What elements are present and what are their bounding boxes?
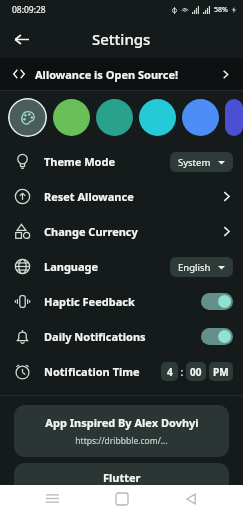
- staticText: https://dribbble.com/...: [75, 435, 168, 447]
- staticText: App Inspired By Alex Dovhyi: [45, 415, 199, 430]
- staticText: System: [178, 156, 211, 169]
- staticText: Notification Time: [44, 364, 140, 379]
- button[interactable]: Toggle: [201, 328, 233, 345]
- button[interactable]: 4: [161, 362, 178, 381]
- staticText: Allowance is Open Source!: [35, 67, 179, 82]
- button[interactable]: Recents: [35, 485, 69, 512]
- staticText: Settings: [92, 29, 151, 49]
- staticText: Theme Mode: [44, 154, 115, 169]
- staticText: Reset Allowance: [44, 189, 134, 204]
- staticText: Daily Notifications: [44, 329, 146, 344]
- button[interactable]: Toggle: [201, 293, 233, 310]
- staticText: PM: [213, 365, 229, 379]
- button[interactable]: Reset Allowance: [0, 179, 243, 214]
- button[interactable]: Flutter: [14, 463, 229, 485]
- button[interactable]: Back: [8, 26, 34, 52]
- button[interactable]: Theme colour: [53, 99, 90, 136]
- button[interactable]: Home: [105, 485, 139, 512]
- staticText: English: [178, 261, 211, 274]
- button[interactable]: App Inspired By Alex Dovhyi: [14, 405, 229, 457]
- staticText: Haptic Feedback: [44, 294, 135, 309]
- staticText: Change Currency: [44, 224, 138, 239]
- button[interactable]: Theme colour: [96, 99, 133, 136]
- button[interactable]: Theme colour: [182, 99, 219, 136]
- staticText: 00: [190, 365, 202, 379]
- button[interactable]: English: [170, 257, 233, 277]
- button[interactable]: Custom theme colour: [8, 98, 47, 137]
- staticText: Language: [44, 259, 99, 274]
- staticText: :: [178, 365, 186, 379]
- button[interactable]: PM: [209, 362, 233, 381]
- button[interactable]: Theme colour: [139, 99, 176, 136]
- button[interactable]: Back: [174, 485, 208, 512]
- button[interactable]: Allowance is Open Source!: [0, 58, 243, 90]
- staticText: 08:09:28: [12, 4, 46, 16]
- button[interactable]: 00: [186, 362, 206, 381]
- button[interactable]: System: [170, 152, 233, 172]
- staticText: Flutter: [103, 470, 141, 485]
- button[interactable]: Change Currency: [0, 214, 243, 249]
- staticText: 58%: [214, 5, 228, 15]
- button[interactable]: Language: [0, 249, 243, 284]
- button[interactable]: Theme colour: [225, 99, 243, 136]
- button[interactable]: Theme Mode: [0, 144, 243, 179]
- staticText: 4: [167, 365, 173, 379]
- button[interactable]: Haptic Feedback: [0, 284, 243, 319]
- button[interactable]: Daily Notifications: [0, 319, 243, 354]
- button[interactable]: Notification Time: [0, 354, 243, 389]
